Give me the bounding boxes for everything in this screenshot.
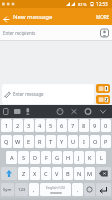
button[interactable]: Enter recipients [0,25,112,41]
staticText: 4 [38,122,42,130]
button[interactable]: 8 [79,119,89,132]
button[interactable]: N [74,167,84,180]
button[interactable]: MORE [96,14,112,20]
staticText: . [77,186,79,193]
staticText: M [87,170,93,178]
staticText: 123 [18,187,26,193]
staticText: , [33,186,35,193]
button[interactable]: 3 [24,119,34,132]
button[interactable]: K [85,151,95,164]
staticText: English (US) [46,185,65,190]
button[interactable]: G [52,151,62,164]
staticText: L [100,154,103,162]
staticText: 2 [16,122,20,130]
button[interactable] [96,183,111,196]
button[interactable]: C [41,167,51,180]
staticText: R [38,138,42,146]
staticText: S [22,154,26,162]
staticText: Sym [3,187,12,193]
button[interactable]: W [13,135,23,148]
staticText: 9 [93,122,97,130]
button[interactable]: F [41,151,51,164]
staticText: O [93,138,98,146]
staticText: Enter recipients [3,30,36,36]
button[interactable]: D [30,151,40,164]
button[interactable]: H [63,151,73,164]
staticText: 5 [49,122,53,130]
button[interactable] [96,167,111,180]
staticText: T [49,138,53,146]
button[interactable]: English (US) [40,183,71,196]
staticText: N [77,170,82,178]
staticText: P [104,138,108,146]
staticText: V [55,170,59,178]
staticText: Y [60,138,64,146]
button[interactable]: Q [1,135,12,148]
button[interactable]: Enter message [2,84,94,104]
staticText: F [45,154,48,162]
button[interactable]: , [29,183,39,196]
staticText: X [33,170,37,178]
button[interactable]: E [24,135,34,148]
staticText: G [55,154,60,162]
staticText: 12:53 [96,1,108,7]
button[interactable] [96,95,110,104]
staticText: W [15,138,21,146]
button[interactable]: Sym [1,183,14,196]
button[interactable]: X [30,167,40,180]
button[interactable]: O [90,135,100,148]
staticText: H [66,154,71,162]
button[interactable]: Z [18,167,29,180]
button[interactable]: J [74,151,84,164]
staticText: 8 [82,122,86,130]
button[interactable]: R [35,135,45,148]
button[interactable]: 6 [57,119,67,132]
staticText: MORE [96,14,110,20]
staticText: C [44,170,48,178]
button[interactable] [0,105,112,118]
button[interactable]: T [46,135,56,148]
button[interactable]: L [96,151,106,164]
staticText: K [88,154,92,162]
staticText: Z [22,170,26,178]
button[interactable]: Y [57,135,67,148]
staticText: B [66,170,70,178]
button[interactable]: 123 [15,183,28,196]
button[interactable]: M [85,167,95,180]
button[interactable] [1,167,17,180]
staticText: J [78,154,80,162]
staticText: 7 [71,122,75,130]
button[interactable]: 5 [46,119,56,132]
button[interactable]: . [72,183,83,196]
button[interactable]: 4 [35,119,45,132]
staticText: 3 [27,122,31,130]
staticText: U [71,138,76,146]
button[interactable]: B [63,167,73,180]
staticText: A [10,154,14,162]
button[interactable] [96,84,110,93]
button[interactable]: 7 [68,119,78,132]
button[interactable] [84,183,95,196]
button[interactable]: I [79,135,89,148]
staticText: 1 [5,122,9,130]
staticText: 81% [78,1,87,7]
button[interactable]: 2 [13,119,23,132]
staticText: Enter message [13,91,44,97]
button[interactable]: 0 [101,119,111,132]
staticText: Q [4,138,9,146]
staticText: I [83,138,85,146]
staticText: D [33,154,38,162]
staticText: E [27,138,31,146]
button[interactable]: P [101,135,111,148]
staticText: New message [13,13,53,21]
button[interactable]: 9 [90,119,100,132]
button[interactable]: V [52,167,62,180]
button[interactable] [98,26,112,40]
button[interactable] [0,11,12,23]
button[interactable]: S [18,151,29,164]
button[interactable]: A [6,151,17,164]
staticText: 6 [60,122,64,130]
button[interactable]: U [68,135,78,148]
staticText: 0 [104,122,108,130]
button[interactable]: 1 [1,119,12,132]
